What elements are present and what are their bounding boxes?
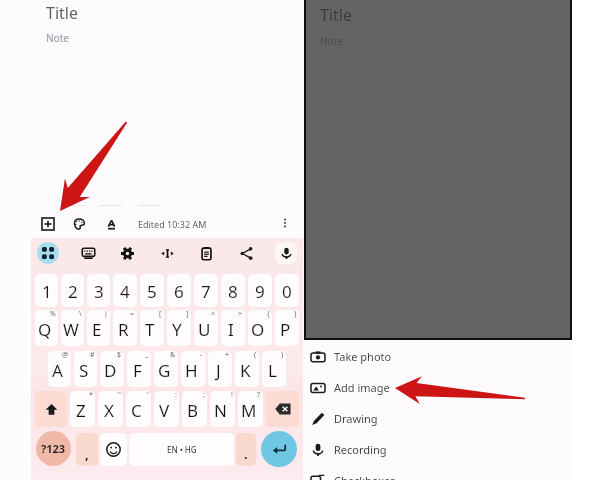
button[interactable]: Voice — [275, 242, 297, 264]
button[interactable]: Shift — [35, 391, 67, 427]
button[interactable]: V — [154, 391, 179, 427]
staticText: - — [200, 351, 203, 360]
button[interactable]: Settings — [116, 242, 138, 264]
button[interactable]: Add — [36, 212, 60, 236]
button[interactable]: 0 — [275, 274, 299, 307]
staticText: J — [216, 359, 221, 382]
button[interactable]: I — [221, 310, 245, 346]
button[interactable]: 7 — [194, 274, 218, 307]
staticText: Recording — [334, 442, 387, 457]
staticText: \ — [79, 310, 82, 319]
staticText: % — [50, 310, 56, 319]
button[interactable]: . — [236, 433, 256, 466]
button[interactable]: Q — [35, 310, 58, 346]
staticText: Q — [38, 318, 52, 341]
staticText: Z — [76, 399, 86, 422]
button[interactable]: R — [113, 310, 137, 346]
button[interactable]: Palette — [67, 212, 91, 236]
button[interactable]: Text format — [99, 212, 123, 236]
staticText: 6 — [174, 280, 184, 303]
staticText: Y — [172, 318, 182, 341]
staticText: 9 — [255, 280, 265, 303]
staticText: Note — [320, 34, 343, 48]
staticText: @ — [62, 351, 69, 360]
button[interactable]: Checkboxes — [304, 465, 572, 480]
staticText: > — [238, 310, 243, 319]
staticText: } — [294, 310, 297, 319]
button[interactable]: S — [74, 351, 97, 387]
button[interactable]: 9 — [248, 274, 272, 307]
staticText: G — [158, 359, 171, 382]
button[interactable]: T — [140, 310, 164, 346]
button[interactable]: Y — [167, 310, 191, 346]
button[interactable]: U — [194, 310, 218, 346]
button[interactable]: W — [61, 310, 84, 346]
staticText: ! — [231, 391, 233, 400]
button[interactable]: G — [154, 351, 178, 387]
button[interactable]: Recording — [304, 434, 572, 465]
button[interactable]: L — [262, 351, 286, 387]
button[interactable]: C — [126, 391, 151, 427]
staticText: 2 — [68, 280, 78, 303]
button[interactable]: K — [235, 351, 259, 387]
button[interactable]: M — [238, 391, 263, 427]
staticText: | — [104, 310, 108, 319]
button[interactable]: Drawing — [304, 403, 572, 434]
button[interactable]: Keyboard — [77, 242, 99, 264]
button[interactable]: F — [127, 351, 151, 387]
button[interactable]: EN • HG — [129, 433, 234, 466]
button[interactable]: Take photo — [304, 341, 572, 372]
staticText: S — [79, 359, 89, 382]
button[interactable]: More options — [274, 212, 296, 234]
button[interactable]: Backspace — [266, 391, 299, 427]
staticText: _ — [145, 351, 149, 360]
button[interactable]: ?123 — [36, 431, 71, 466]
button[interactable]: Z — [70, 391, 95, 427]
staticText: ?123 — [41, 441, 66, 456]
staticText: A — [52, 359, 63, 382]
button[interactable]: Emoji — [100, 433, 127, 466]
staticText: B — [187, 399, 199, 422]
staticText: ; — [203, 391, 205, 400]
staticText: C — [131, 399, 142, 422]
staticText: 1 — [42, 280, 52, 303]
button[interactable]: Stickers — [37, 242, 59, 264]
button[interactable]: 2 — [61, 274, 84, 307]
staticText: 5 — [147, 280, 157, 303]
button[interactable]: J — [208, 351, 232, 387]
button[interactable]: P — [275, 310, 299, 346]
staticText: Add image — [334, 380, 390, 395]
button[interactable]: , — [76, 433, 98, 466]
staticText: Note — [46, 31, 69, 45]
staticText: + — [225, 351, 230, 360]
button[interactable]: N — [210, 391, 235, 427]
staticText: 3 — [94, 280, 104, 303]
button[interactable]: E — [87, 310, 110, 346]
button[interactable]: D — [100, 351, 124, 387]
button[interactable]: X — [98, 391, 123, 427]
button[interactable]: Add image — [304, 372, 572, 403]
button[interactable]: Clipboard — [195, 242, 217, 264]
button[interactable]: Enter — [261, 431, 297, 467]
button[interactable]: 8 — [221, 274, 245, 307]
staticText: T — [145, 318, 155, 341]
staticText: 4 — [120, 280, 130, 303]
button[interactable]: Share — [235, 242, 257, 264]
button[interactable]: 4 — [113, 274, 137, 307]
staticText: Checkboxes — [334, 473, 396, 480]
button[interactable]: B — [182, 391, 207, 427]
button[interactable]: A — [48, 351, 71, 387]
button[interactable]: O — [248, 310, 272, 346]
button[interactable]: 3 — [87, 274, 110, 307]
button[interactable]: Cursor — [156, 242, 178, 264]
staticText: EN • HG — [167, 444, 197, 455]
button[interactable]: 5 — [140, 274, 164, 307]
staticText: U — [198, 318, 211, 341]
button[interactable]: H — [181, 351, 205, 387]
staticText: E — [92, 318, 102, 341]
staticText: D — [104, 359, 117, 382]
button[interactable]: 1 — [35, 274, 58, 307]
button[interactable]: 6 — [167, 274, 191, 307]
staticText: Take photo — [334, 349, 392, 364]
staticText: = — [130, 310, 135, 319]
